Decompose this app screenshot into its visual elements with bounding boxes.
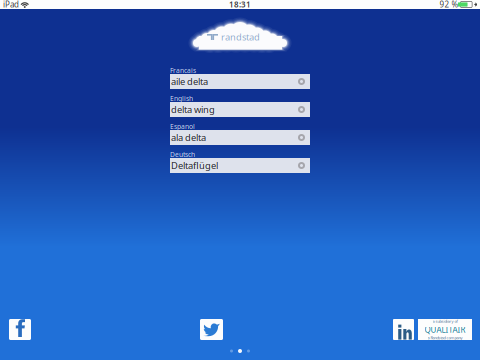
staticText: Deltaflügel [171, 159, 218, 172]
staticText: iPad [3, 0, 19, 10]
staticText: Francais [170, 66, 196, 75]
staticText: Deutsch [170, 150, 195, 159]
staticText: 18:31 [229, 0, 251, 10]
button[interactable]: Twitter [200, 319, 223, 340]
staticText: a Randstad company [427, 335, 462, 340]
staticText: 92 % [439, 0, 458, 10]
button[interactable]: aile delta [170, 74, 310, 89]
staticText: delta wing [171, 103, 215, 116]
button[interactable]: delta wing [170, 102, 310, 117]
staticText: QUALITAIR [424, 324, 465, 335]
staticText: ala delta [171, 131, 206, 144]
button[interactable]: Deltaflügel [170, 158, 310, 173]
staticText: aile delta [171, 75, 208, 88]
staticText: randstad [221, 31, 260, 43]
button[interactable]: ala delta [170, 130, 310, 145]
button[interactable]: LinkedIn [393, 319, 414, 340]
button[interactable]: Facebook [9, 319, 31, 340]
button[interactable]: Qualitair [418, 319, 472, 340]
staticText: a subsidiary of [432, 319, 457, 324]
staticText: English [170, 94, 193, 103]
staticText: Espanol [170, 122, 195, 131]
